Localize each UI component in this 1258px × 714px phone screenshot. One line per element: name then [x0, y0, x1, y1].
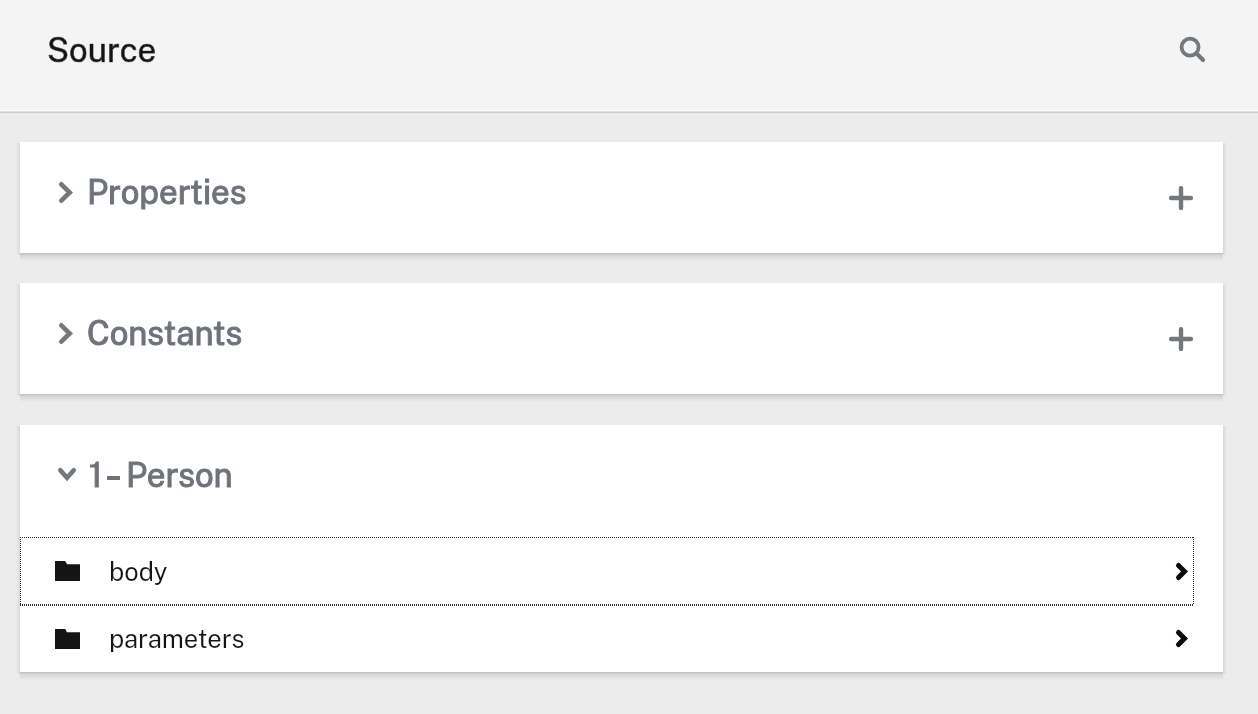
staticText: 1: [89, 456, 103, 495]
staticText: parameters: [109, 624, 245, 654]
button[interactable]: Search: [1172, 29, 1216, 73]
staticText: Constants: [87, 314, 243, 353]
staticText: Source: [47, 31, 157, 70]
button[interactable]: body: [20, 537, 1223, 605]
staticText: Person: [126, 456, 233, 495]
staticText: Properties: [87, 173, 247, 212]
staticText: body: [109, 557, 168, 587]
staticText: Properties: [87, 173, 247, 212]
button[interactable]: Add: [1159, 317, 1203, 361]
button[interactable]: Add: [1159, 176, 1203, 220]
button[interactable]: 1 – Person: [20, 425, 1223, 537]
button[interactable]: Properties: [20, 142, 1223, 253]
staticText: Constants: [87, 314, 243, 353]
button[interactable]: parameters: [20, 605, 1223, 672]
staticText: 1: [89, 456, 103, 495]
button[interactable]: Constants: [20, 283, 1223, 394]
staticText: Source: [47, 31, 157, 70]
staticText: Person: [126, 456, 233, 495]
